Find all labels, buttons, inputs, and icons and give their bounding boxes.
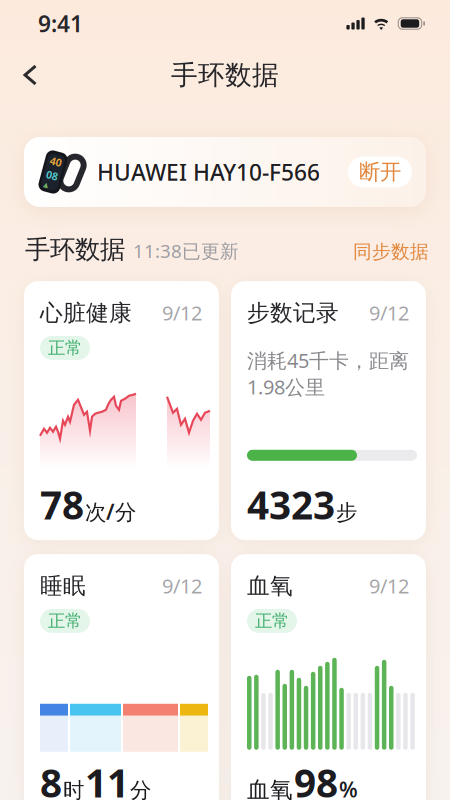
staticText: 手环数据 bbox=[25, 234, 125, 265]
staticText: 血氧 bbox=[247, 572, 293, 600]
staticText: 9/12 bbox=[369, 299, 409, 326]
staticText: 9/12 bbox=[162, 299, 202, 326]
staticText: 睡眠 bbox=[40, 572, 86, 600]
staticText: 手环数据 bbox=[171, 59, 279, 91]
staticText: 断开 bbox=[359, 159, 401, 185]
staticText: 时 bbox=[63, 777, 84, 800]
button[interactable]: 同步数据 bbox=[353, 240, 429, 263]
button[interactable]: 返回 bbox=[0, 54, 38, 95]
staticText: 9:41 bbox=[38, 8, 83, 38]
staticText: 正常 bbox=[255, 610, 289, 632]
staticText: 正常 bbox=[48, 337, 82, 359]
staticText: 同步数据 bbox=[353, 240, 429, 263]
staticText: 正常 bbox=[48, 610, 82, 632]
staticText: 心脏健康 bbox=[40, 299, 132, 327]
staticText: 步数记录 bbox=[247, 299, 339, 327]
staticText: 11 bbox=[85, 757, 129, 800]
staticText: 4323 bbox=[247, 479, 335, 530]
button[interactable]: 血氧 bbox=[231, 554, 426, 800]
button[interactable]: 断开 bbox=[348, 156, 412, 187]
staticText: 消耗45千卡，距离 bbox=[247, 347, 409, 374]
staticText: 98 bbox=[294, 757, 338, 800]
button[interactable]: 心脏健康 bbox=[24, 281, 219, 540]
staticText: 血氧 bbox=[247, 776, 293, 800]
button[interactable]: 步数记录 bbox=[231, 281, 426, 540]
staticText: 分 bbox=[130, 777, 151, 800]
staticText: 8 bbox=[40, 757, 62, 800]
staticText: 1.98公里 bbox=[247, 373, 325, 400]
staticText: 9/12 bbox=[162, 572, 202, 599]
staticText: 78 bbox=[40, 479, 84, 530]
staticText: HUAWEI HAY10-F566 bbox=[97, 157, 320, 187]
staticText: 次/分 bbox=[85, 497, 136, 526]
button[interactable]: 睡眠 bbox=[24, 554, 219, 800]
staticText: 9/12 bbox=[369, 572, 409, 599]
staticText: 40 bbox=[47, 154, 59, 168]
staticText: 11:38已更新 bbox=[133, 238, 239, 263]
staticText: 步 bbox=[336, 499, 357, 525]
staticText: ▲ bbox=[47, 182, 52, 190]
staticText: 08 bbox=[47, 168, 59, 182]
staticText: % bbox=[339, 775, 358, 800]
